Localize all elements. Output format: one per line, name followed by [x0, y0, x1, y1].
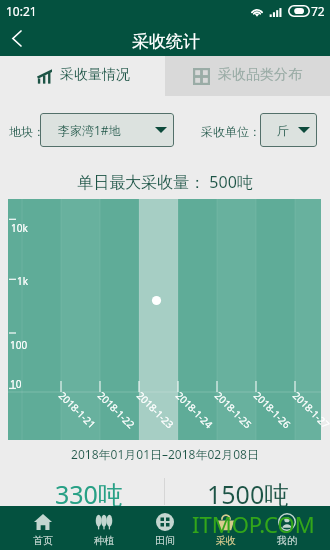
staticText: 10:21: [6, 3, 37, 19]
staticText: 单日最大采收量： 500吨: [0, 171, 330, 193]
staticText: 2018年01月01日–2018年02月08日: [0, 446, 330, 462]
button[interactable]: Back: [0, 22, 32, 54]
staticText: 斤: [277, 123, 289, 138]
staticText: 采收统计: [132, 31, 200, 52]
staticText: 2018-1-24: [173, 388, 216, 431]
staticText: 2018-1-21: [56, 388, 99, 431]
staticText: 采收: [216, 534, 236, 547]
staticText: 种植: [94, 534, 114, 547]
staticText: 330吨: [55, 477, 123, 511]
staticText: 1k: [17, 274, 29, 288]
button[interactable]: 采收品类分布: [165, 56, 330, 96]
button[interactable]: 种植: [73, 506, 134, 550]
button[interactable]: 田间: [134, 506, 195, 550]
button[interactable]: 李家湾1#地: [40, 113, 174, 147]
staticText: ITMOP.COM: [192, 509, 315, 539]
staticText: 采收品类分布: [218, 66, 302, 84]
staticText: 2018-1-27: [290, 388, 330, 431]
button[interactable]: 斤: [260, 113, 317, 147]
button[interactable]: 我的: [256, 506, 317, 550]
staticText: 田间: [155, 534, 175, 547]
staticText: 2018-1-25: [212, 388, 255, 431]
staticText: 100: [10, 338, 28, 352]
button[interactable]: 330吨: [55, 477, 123, 511]
button[interactable]: 采收量情况: [0, 56, 165, 96]
staticText: 地块：: [9, 124, 45, 139]
staticText: 首页: [33, 534, 53, 547]
staticText: 我的: [277, 534, 297, 547]
button[interactable]: 采收: [195, 506, 256, 550]
staticText: 2018-1-23: [134, 388, 177, 431]
staticText: 1500吨: [207, 477, 290, 511]
staticText: 10: [10, 377, 22, 391]
staticText: 采收单位：: [201, 124, 261, 139]
staticText: 2018-1-26: [251, 388, 294, 431]
staticText: 10k: [11, 221, 28, 235]
button[interactable]: 首页: [13, 506, 73, 550]
staticText: 李家湾1#地: [58, 122, 121, 138]
staticText: 72: [311, 3, 325, 19]
staticText: 2018-1-22: [95, 388, 138, 431]
staticText: 采收量情况: [60, 66, 130, 84]
button[interactable]: 1500吨: [207, 477, 290, 511]
